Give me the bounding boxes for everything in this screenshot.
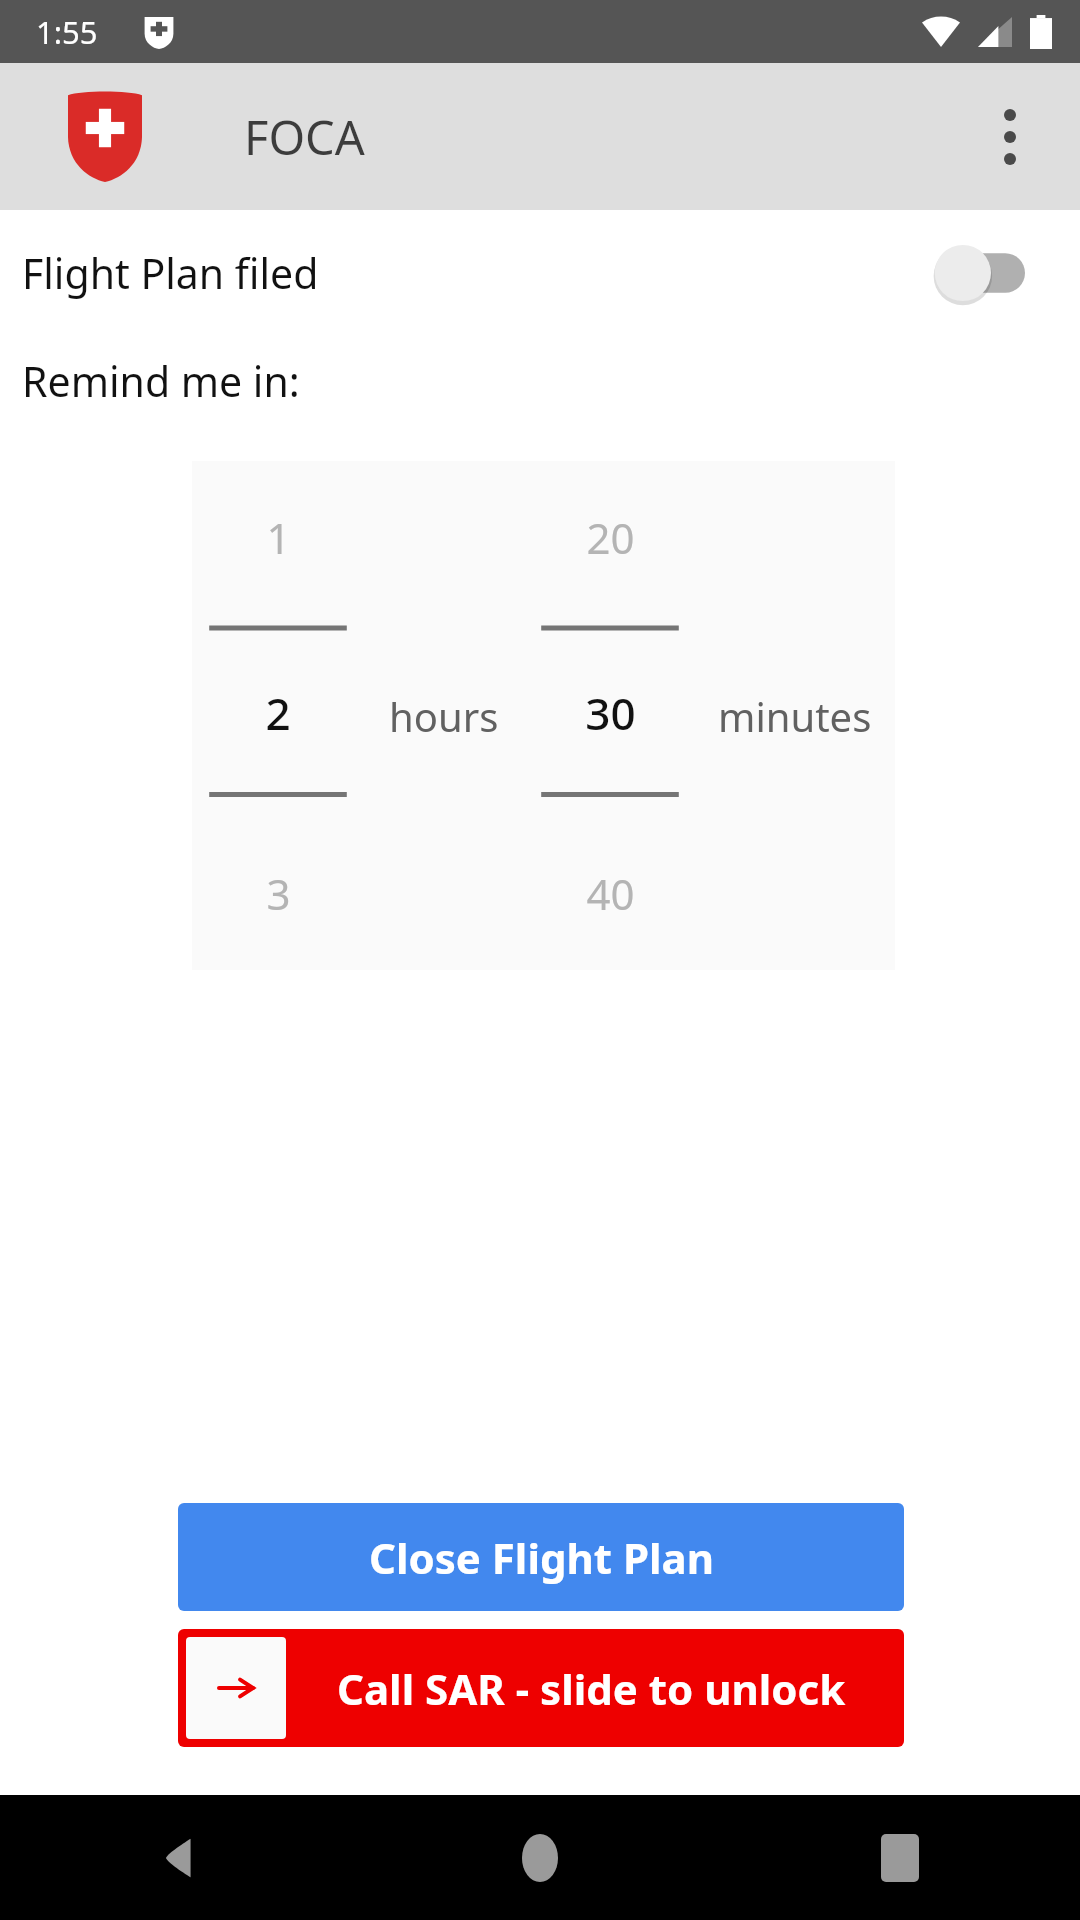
staticText: 2 <box>265 683 291 743</box>
staticText: 3 <box>266 865 291 922</box>
staticText: 1 <box>266 509 291 566</box>
button[interactable]: Call SAR - slide to unlock <box>178 1629 904 1747</box>
button[interactable]: Flight Plan filed toggle <box>926 235 1036 311</box>
staticText: FOCA <box>244 105 365 169</box>
staticText: 30 <box>585 683 636 743</box>
staticText: 20 <box>586 509 635 566</box>
staticText: Flight Plan filed <box>22 245 926 301</box>
staticText: 40 <box>586 865 635 922</box>
staticText: 1:55 <box>36 11 98 53</box>
button[interactable]: Recent apps <box>720 1795 1080 1920</box>
staticText: Call SAR - slide to unlock <box>337 1660 846 1717</box>
button[interactable]: More options <box>962 89 1058 185</box>
staticText: Close Flight Plan <box>369 1529 714 1586</box>
button[interactable]: 20 <box>524 461 696 970</box>
button[interactable]: Home <box>360 1795 720 1920</box>
staticText: hours <box>389 689 499 743</box>
button[interactable]: Flight Plan filed <box>0 213 1080 333</box>
button[interactable]: Close Flight Plan <box>178 1503 904 1611</box>
staticText: Remind me in: <box>22 353 300 409</box>
button[interactable]: 1 <box>192 461 364 970</box>
button[interactable]: Back <box>0 1795 360 1920</box>
button[interactable]: FOCA logo <box>60 92 150 182</box>
staticText: minutes <box>718 689 872 743</box>
